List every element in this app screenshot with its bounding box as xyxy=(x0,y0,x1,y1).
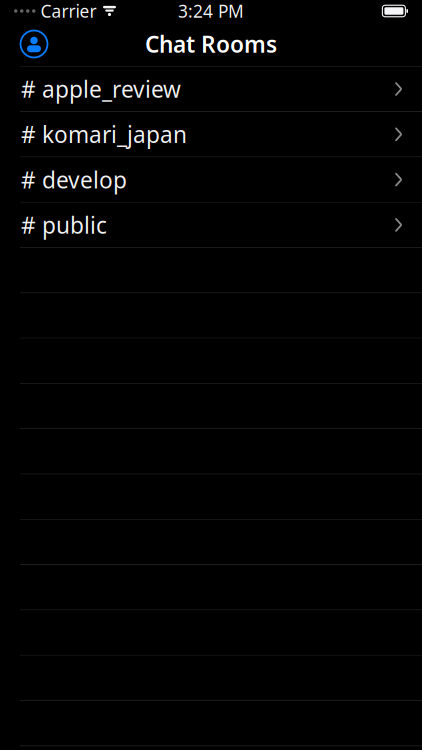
staticText: # komari_japan xyxy=(21,119,187,149)
button[interactable]: # public xyxy=(0,203,422,247)
button[interactable]: # develop xyxy=(0,157,422,202)
staticText: # public xyxy=(21,210,107,240)
staticText: Carrier xyxy=(40,0,96,22)
staticText: # apple_review xyxy=(21,74,181,104)
staticText: # develop xyxy=(21,164,127,195)
button[interactable]: Account xyxy=(12,22,56,66)
staticText: Chat Rooms xyxy=(145,29,277,59)
button[interactable]: # komari_japan xyxy=(0,112,422,157)
staticText: 3:24 PM xyxy=(178,0,244,22)
button[interactable]: # apple_review xyxy=(0,67,422,111)
